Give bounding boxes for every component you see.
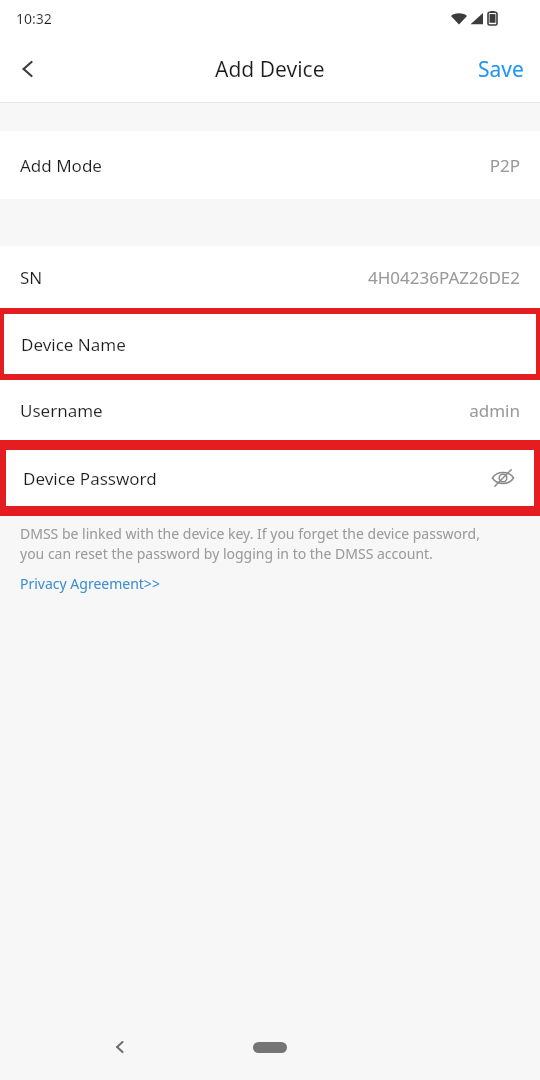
button[interactable]: Username [0, 380, 540, 440]
button[interactable]: SN [0, 246, 540, 308]
staticText: Username [20, 399, 103, 422]
staticText: DMSS be linked with the device key. If y… [20, 524, 488, 564]
staticText: Add Mode [20, 154, 102, 177]
staticText: Add Device [215, 55, 325, 84]
button[interactable]: Device Password [6, 450, 534, 506]
button[interactable]: Back [0, 41, 56, 97]
button[interactable]: Show password [486, 461, 520, 495]
staticText: 10:32 [16, 9, 52, 28]
staticText: Device Password [23, 467, 157, 490]
staticText: 4H04236PAZ26DE2 [368, 266, 520, 289]
button[interactable]: Save [478, 55, 524, 84]
button[interactable]: Back [96, 1023, 144, 1071]
staticText: Device Name [21, 333, 126, 356]
staticText: P2P [489, 154, 520, 177]
button[interactable]: Device Name [4, 314, 536, 374]
button[interactable]: Add Mode [0, 131, 540, 199]
staticText: Privacy Agreement>> [20, 574, 160, 593]
button[interactable]: Home [253, 1042, 287, 1053]
staticText: Save [478, 55, 524, 84]
staticText: SN [20, 266, 43, 289]
staticText: admin [469, 399, 520, 422]
button[interactable]: Privacy Agreement>> [20, 574, 160, 593]
